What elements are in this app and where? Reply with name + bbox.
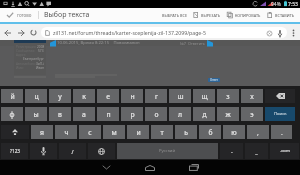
- staticText: м: [111, 128, 117, 137]
- button[interactable]: ?123: [1, 143, 28, 159]
- staticText: Автомобиль:: [16, 62, 36, 66]
- staticText: т: [160, 128, 164, 137]
- button[interactable]: Ответ: [208, 78, 220, 82]
- button[interactable]: ф: [1, 107, 23, 121]
- staticText: ц: [34, 92, 39, 101]
- button[interactable]: готово: [0, 8, 38, 22]
- button[interactable]: Voice search: [276, 29, 284, 37]
- button[interactable]: Voice input: [30, 143, 57, 159]
- button[interactable]: Русский: [117, 143, 218, 159]
- staticText: №7 Ответить: [180, 41, 205, 46]
- button[interactable]: л: [169, 107, 191, 121]
- button[interactable]: Forward: [16, 28, 25, 37]
- button[interactable]: ы: [25, 107, 47, 121]
- staticText: КОПИРОВАТЬ: [235, 13, 261, 18]
- staticText: 573: [38, 49, 44, 53]
- button[interactable]: Clear: [265, 29, 273, 37]
- button[interactable]: й: [1, 89, 23, 103]
- button[interactable]: а: [73, 107, 95, 121]
- button[interactable]: Hide keyboard: [91, 160, 121, 175]
- button[interactable]: ,: [247, 125, 269, 139]
- button[interactable]: п: [97, 107, 119, 121]
- button[interactable]: Поиск: [265, 107, 295, 121]
- button[interactable]: _: [245, 143, 268, 159]
- staticText: л: [178, 110, 182, 119]
- staticText: Русский: [159, 148, 176, 154]
- staticText: ы: [33, 110, 39, 119]
- button[interactable]: Back: [3, 28, 12, 37]
- staticText: о: [154, 110, 159, 119]
- button[interactable]: е: [97, 89, 119, 103]
- staticText: ф: [9, 110, 15, 119]
- button[interactable]: к: [73, 89, 95, 103]
- button[interactable]: в: [49, 107, 71, 121]
- button[interactable]: т: [151, 125, 173, 139]
- staticText: б: [208, 128, 213, 137]
- button[interactable]: э: [241, 107, 263, 121]
- button[interactable]: .: [271, 125, 292, 139]
- button[interactable]: More options: [289, 28, 298, 37]
- staticText: Выбор текста: [44, 10, 90, 20]
- staticText: н: [130, 92, 135, 101]
- staticText: Имя:: [16, 66, 24, 70]
- staticText: Поиск: [274, 111, 287, 117]
- button[interactable]: о: [145, 107, 167, 121]
- staticText: с: [88, 128, 92, 137]
- button[interactable]: ВЫБРАТЬ ВСЕ: [159, 8, 190, 22]
- button[interactable]: б: [199, 125, 221, 139]
- button[interactable]: и: [127, 125, 149, 139]
- staticText: ВСТАВИТЬ: [275, 13, 295, 18]
- staticText: е: [106, 92, 110, 101]
- button[interactable]: д: [193, 107, 215, 121]
- button[interactable]: я: [31, 125, 53, 139]
- staticText: ч: [64, 128, 69, 137]
- staticText: ш: [177, 92, 184, 101]
- staticText: ь: [184, 128, 188, 137]
- staticText: ЗиЛ-4331: [36, 62, 44, 66]
- button[interactable]: Recent apps: [179, 160, 209, 175]
- button[interactable]: с: [79, 125, 101, 139]
- button[interactable]: у: [49, 89, 71, 103]
- staticText: 94%: [271, 1, 281, 8]
- staticText: ю: [231, 128, 237, 137]
- staticText: 10.06.2015, Время 8:22:15 Поволжанин: [57, 40, 140, 46]
- button[interactable]: ь: [175, 125, 197, 139]
- staticText: Екатеринбург: [23, 57, 44, 61]
- staticText: Адрес:: [16, 53, 27, 57]
- button[interactable]: ц: [25, 89, 47, 103]
- button[interactable]: ж: [217, 107, 239, 121]
- button[interactable]: /: [59, 143, 86, 159]
- staticText: щ: [201, 92, 208, 101]
- button[interactable]: .com: [270, 143, 299, 159]
- button[interactable]: з: [217, 89, 239, 103]
- button[interactable]: Switch language: [88, 143, 115, 159]
- button[interactable]: Home: [135, 160, 165, 175]
- staticText: Иван: [36, 66, 44, 70]
- staticText: 2008: [37, 45, 44, 49]
- button[interactable]: м: [103, 125, 125, 139]
- button[interactable]: zil131.net/forum/threads/karter-scepleni…: [41, 27, 287, 38]
- button[interactable]: ш: [169, 89, 191, 103]
- button[interactable]: ч: [55, 125, 77, 139]
- button[interactable]: КОПИРОВАТЬ: [224, 8, 264, 22]
- staticText: /: [71, 148, 74, 155]
- staticText: й: [10, 92, 15, 101]
- staticText: ВЫРЕЗАТЬ: [201, 13, 221, 18]
- staticText: ВЫБРАТЬ ВСЕ: [162, 13, 187, 18]
- staticText: готово: [17, 12, 32, 18]
- button[interactable]: Backspace: [265, 89, 295, 103]
- button[interactable]: ВСТАВИТЬ: [264, 8, 298, 22]
- staticText: Ответ: [210, 78, 218, 82]
- button[interactable]: Reload: [29, 28, 38, 37]
- button[interactable]: р: [121, 107, 143, 121]
- button[interactable]: щ: [193, 89, 215, 103]
- staticText: -: [231, 148, 233, 155]
- button[interactable]: г: [145, 89, 167, 103]
- staticText: э: [250, 110, 254, 119]
- button[interactable]: н: [121, 89, 143, 103]
- button[interactable]: ВЫРЕЗАТЬ: [190, 8, 224, 22]
- button[interactable]: х: [241, 89, 263, 103]
- button[interactable]: -: [220, 143, 243, 159]
- button[interactable]: Shift: [1, 125, 29, 139]
- button[interactable]: ю: [223, 125, 245, 139]
